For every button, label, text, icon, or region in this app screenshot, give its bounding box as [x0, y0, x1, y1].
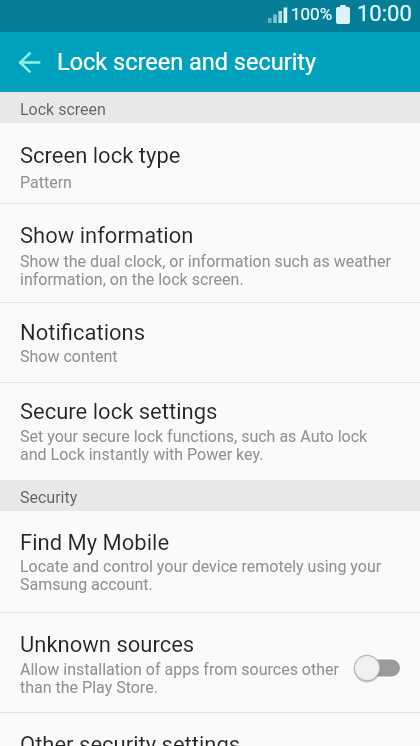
staticText: Locate and control your device remotely …: [20, 557, 382, 576]
staticText: information, on the lock screen.: [20, 270, 244, 289]
staticText: Samsung account.: [20, 575, 153, 594]
staticText: Notifications: [20, 320, 146, 346]
staticText: Secure lock settings: [20, 399, 218, 425]
staticText: 100%: [291, 4, 333, 24]
staticText: Show information: [20, 223, 194, 249]
staticText: Pattern: [20, 173, 72, 192]
button[interactable]: Notifications: [0, 303, 420, 383]
staticText: Security: [20, 488, 78, 507]
staticText: Lock screen and security: [57, 48, 317, 76]
button[interactable]: Other security settings: [0, 713, 420, 746]
button[interactable]: [6, 39, 52, 85]
button[interactable]: [341, 653, 401, 683]
staticText: Lock screen: [20, 100, 106, 119]
button[interactable]: Find My Mobile: [0, 511, 420, 613]
button[interactable]: Show information: [0, 204, 420, 303]
staticText: Show content: [20, 347, 118, 366]
staticText: Find My Mobile: [20, 530, 170, 556]
staticText: Unknown sources: [20, 632, 195, 658]
staticText: Other security settings: [20, 732, 241, 746]
staticText: Screen lock type: [20, 143, 181, 169]
button[interactable]: Unknown sources: [0, 613, 420, 713]
staticText: than the Play Store.: [20, 678, 158, 697]
button[interactable]: Screen lock type: [0, 123, 420, 204]
staticText: 10:00: [357, 1, 412, 27]
button[interactable]: Secure lock settings: [0, 383, 420, 480]
staticText: Allow installation of apps from sources …: [20, 660, 339, 679]
staticText: Set your secure lock functions, such as …: [20, 427, 368, 446]
staticText: and Lock instantly with Power key.: [20, 445, 264, 464]
staticText: Show the dual clock, or information such…: [20, 252, 391, 271]
